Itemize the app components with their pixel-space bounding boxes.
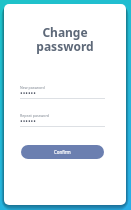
button[interactable]: New password <box>20 84 105 101</box>
staticText: Repeat password <box>20 113 50 118</box>
staticText: Confirm <box>54 149 71 155</box>
button[interactable]: Confirm <box>21 145 104 159</box>
staticText: •••••• <box>20 117 36 127</box>
staticText: Change password <box>4 24 126 54</box>
staticText: •••••• <box>20 89 36 99</box>
button[interactable]: Repeat password <box>20 112 105 129</box>
staticText: New password <box>20 85 45 90</box>
